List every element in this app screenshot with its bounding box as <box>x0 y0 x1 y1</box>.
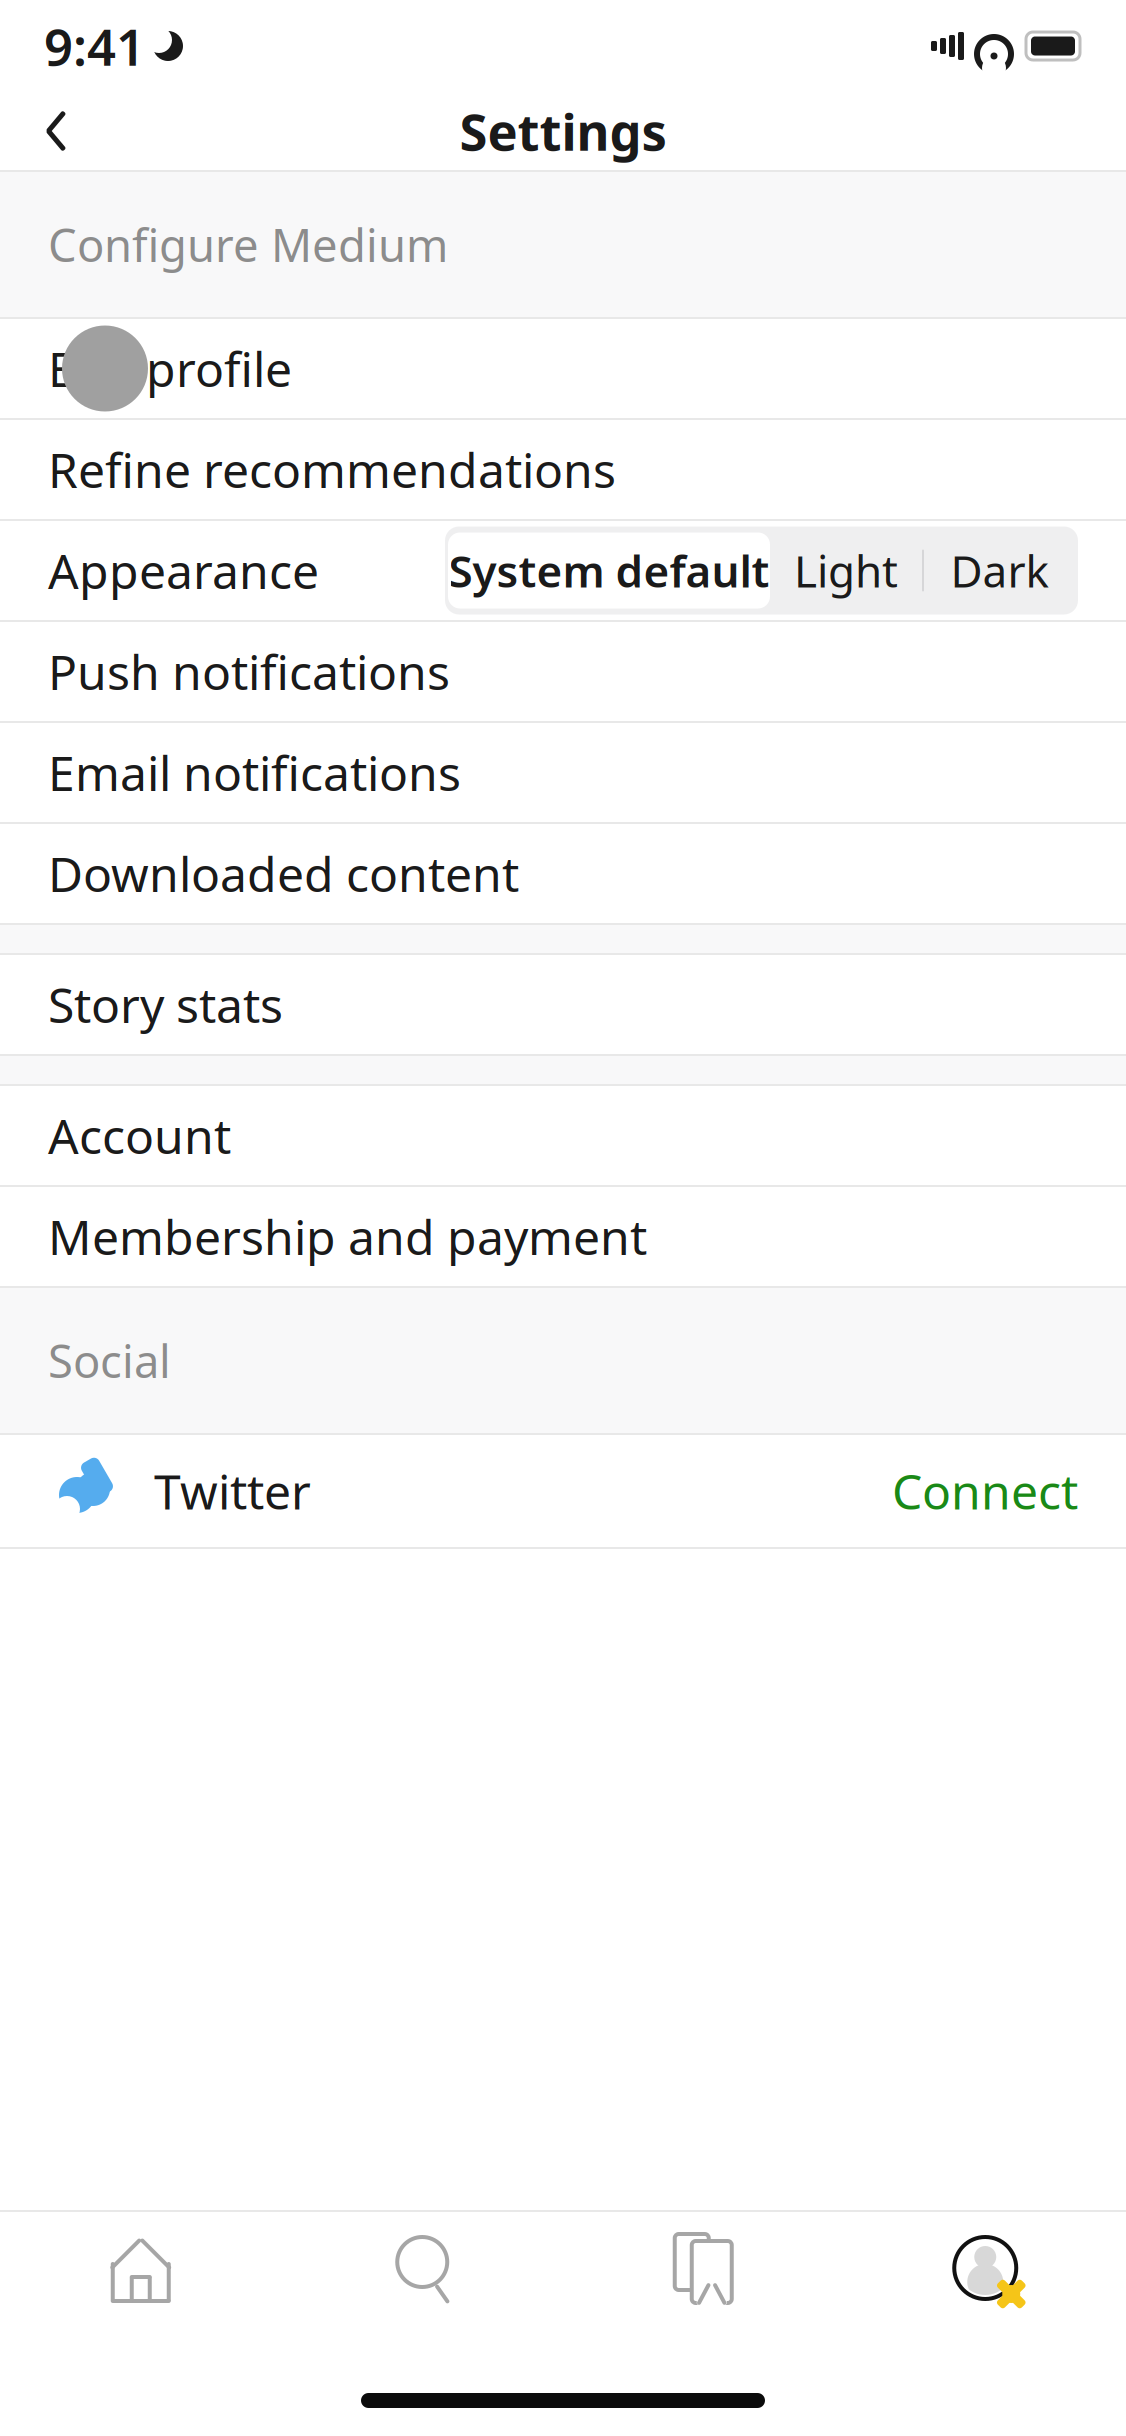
button[interactable]: Email notifications <box>0 723 1126 822</box>
button[interactable]: System default <box>448 532 770 608</box>
button[interactable]: Downloaded content <box>0 824 1126 923</box>
staticText: Membership and payment <box>48 1205 647 1268</box>
staticText: Email notifications <box>48 741 461 804</box>
button[interactable]: Light <box>770 532 922 608</box>
staticText: Settings <box>459 97 666 165</box>
staticText: Dark <box>950 541 1048 600</box>
button[interactable]: Story stats <box>0 955 1126 1054</box>
button[interactable]: Profile <box>844 2212 1126 2324</box>
staticText: Twitter <box>154 1459 311 1523</box>
button[interactable]: Refine recommendations <box>0 420 1126 519</box>
button[interactable]: Twitter <box>0 1435 1126 1547</box>
staticText: Downloaded content <box>48 842 519 905</box>
button[interactable]: Membership and payment <box>0 1187 1126 1286</box>
staticText: Social <box>48 1330 171 1391</box>
button[interactable]: Edit profile <box>0 319 1126 418</box>
staticText: System default <box>448 541 769 600</box>
button[interactable]: Account <box>0 1086 1126 1185</box>
staticText: Connect <box>892 1459 1078 1523</box>
staticText: Configure Medium <box>48 214 448 275</box>
staticText: 9:41 <box>44 12 145 80</box>
button[interactable]: Home <box>0 2212 281 2324</box>
staticText: Edit profile <box>48 337 292 400</box>
staticText: Refine recommendations <box>48 438 616 501</box>
button[interactable]: Search <box>281 2212 563 2324</box>
staticText: Account <box>48 1104 231 1167</box>
button[interactable]: Push notifications <box>0 622 1126 721</box>
button[interactable]: Back <box>28 103 84 159</box>
button[interactable]: Dark <box>924 532 1075 608</box>
staticText: Light <box>794 541 898 600</box>
staticText: Appearance <box>48 539 319 602</box>
staticText: Story stats <box>48 973 283 1036</box>
button[interactable]: Bookmarks <box>563 2212 844 2324</box>
staticText: Push notifications <box>48 640 450 703</box>
